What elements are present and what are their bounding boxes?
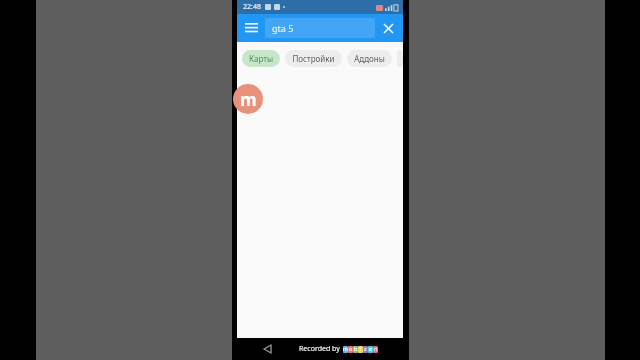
button[interactable]: App logo [233, 84, 263, 114]
staticText: Карты [249, 53, 273, 64]
staticText: m [343, 346, 348, 353]
button[interactable]: Аддоны [347, 50, 392, 67]
staticText: i [360, 346, 362, 353]
staticText: z [364, 346, 367, 353]
button[interactable]: Постройки [285, 50, 342, 67]
staticText: e [369, 346, 372, 353]
staticText: Постройки [292, 53, 335, 64]
staticText: 22:48 [243, 2, 261, 12]
staticText: gta 5 [272, 22, 294, 34]
button[interactable]: gta 5 [265, 18, 375, 38]
button[interactable]: Back [259, 341, 275, 357]
staticText: Аддоны [354, 53, 385, 64]
staticText: b [354, 346, 358, 353]
staticText: Recorded by [299, 344, 340, 354]
button[interactable]: Clear search [375, 15, 401, 41]
staticText: m [240, 88, 257, 111]
staticText: n [374, 346, 378, 353]
button[interactable]: Open navigation menu [237, 14, 265, 42]
staticText: o [349, 346, 353, 353]
button[interactable]: Карты [242, 50, 280, 67]
